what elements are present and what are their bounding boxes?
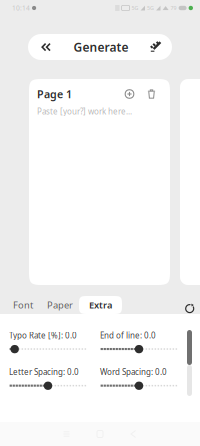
button[interactable]: Delete page: [145, 88, 158, 100]
staticText: 5G: [147, 4, 154, 12]
button[interactable]: Paper: [41, 296, 79, 314]
button[interactable]: Generate with AI: [145, 34, 167, 60]
staticText: 10:14: [12, 4, 30, 12]
button[interactable]: Reset: [180, 296, 200, 314]
staticText: Generate: [73, 39, 128, 55]
button[interactable]: Extra: [79, 296, 122, 314]
staticText: Paper: [47, 299, 73, 311]
button[interactable]: Add page: [122, 88, 137, 100]
staticText: Word Spacing: 0.0: [100, 367, 167, 377]
staticText: Paste [your?] work here...: [37, 106, 132, 117]
button[interactable]: Font: [5, 296, 41, 314]
staticText: Letter Spacing: 0.0: [9, 367, 79, 377]
staticText: 79: [171, 4, 177, 12]
staticText: Font: [13, 299, 33, 311]
staticText: 5G: [132, 4, 139, 12]
staticText: Page 1: [37, 87, 72, 101]
staticText: Extra: [89, 299, 112, 311]
staticText: End of line: 0.0: [100, 330, 156, 341]
button[interactable]: Back: [35, 34, 57, 60]
staticText: Typo Rate [%]: 0.0: [9, 330, 77, 341]
